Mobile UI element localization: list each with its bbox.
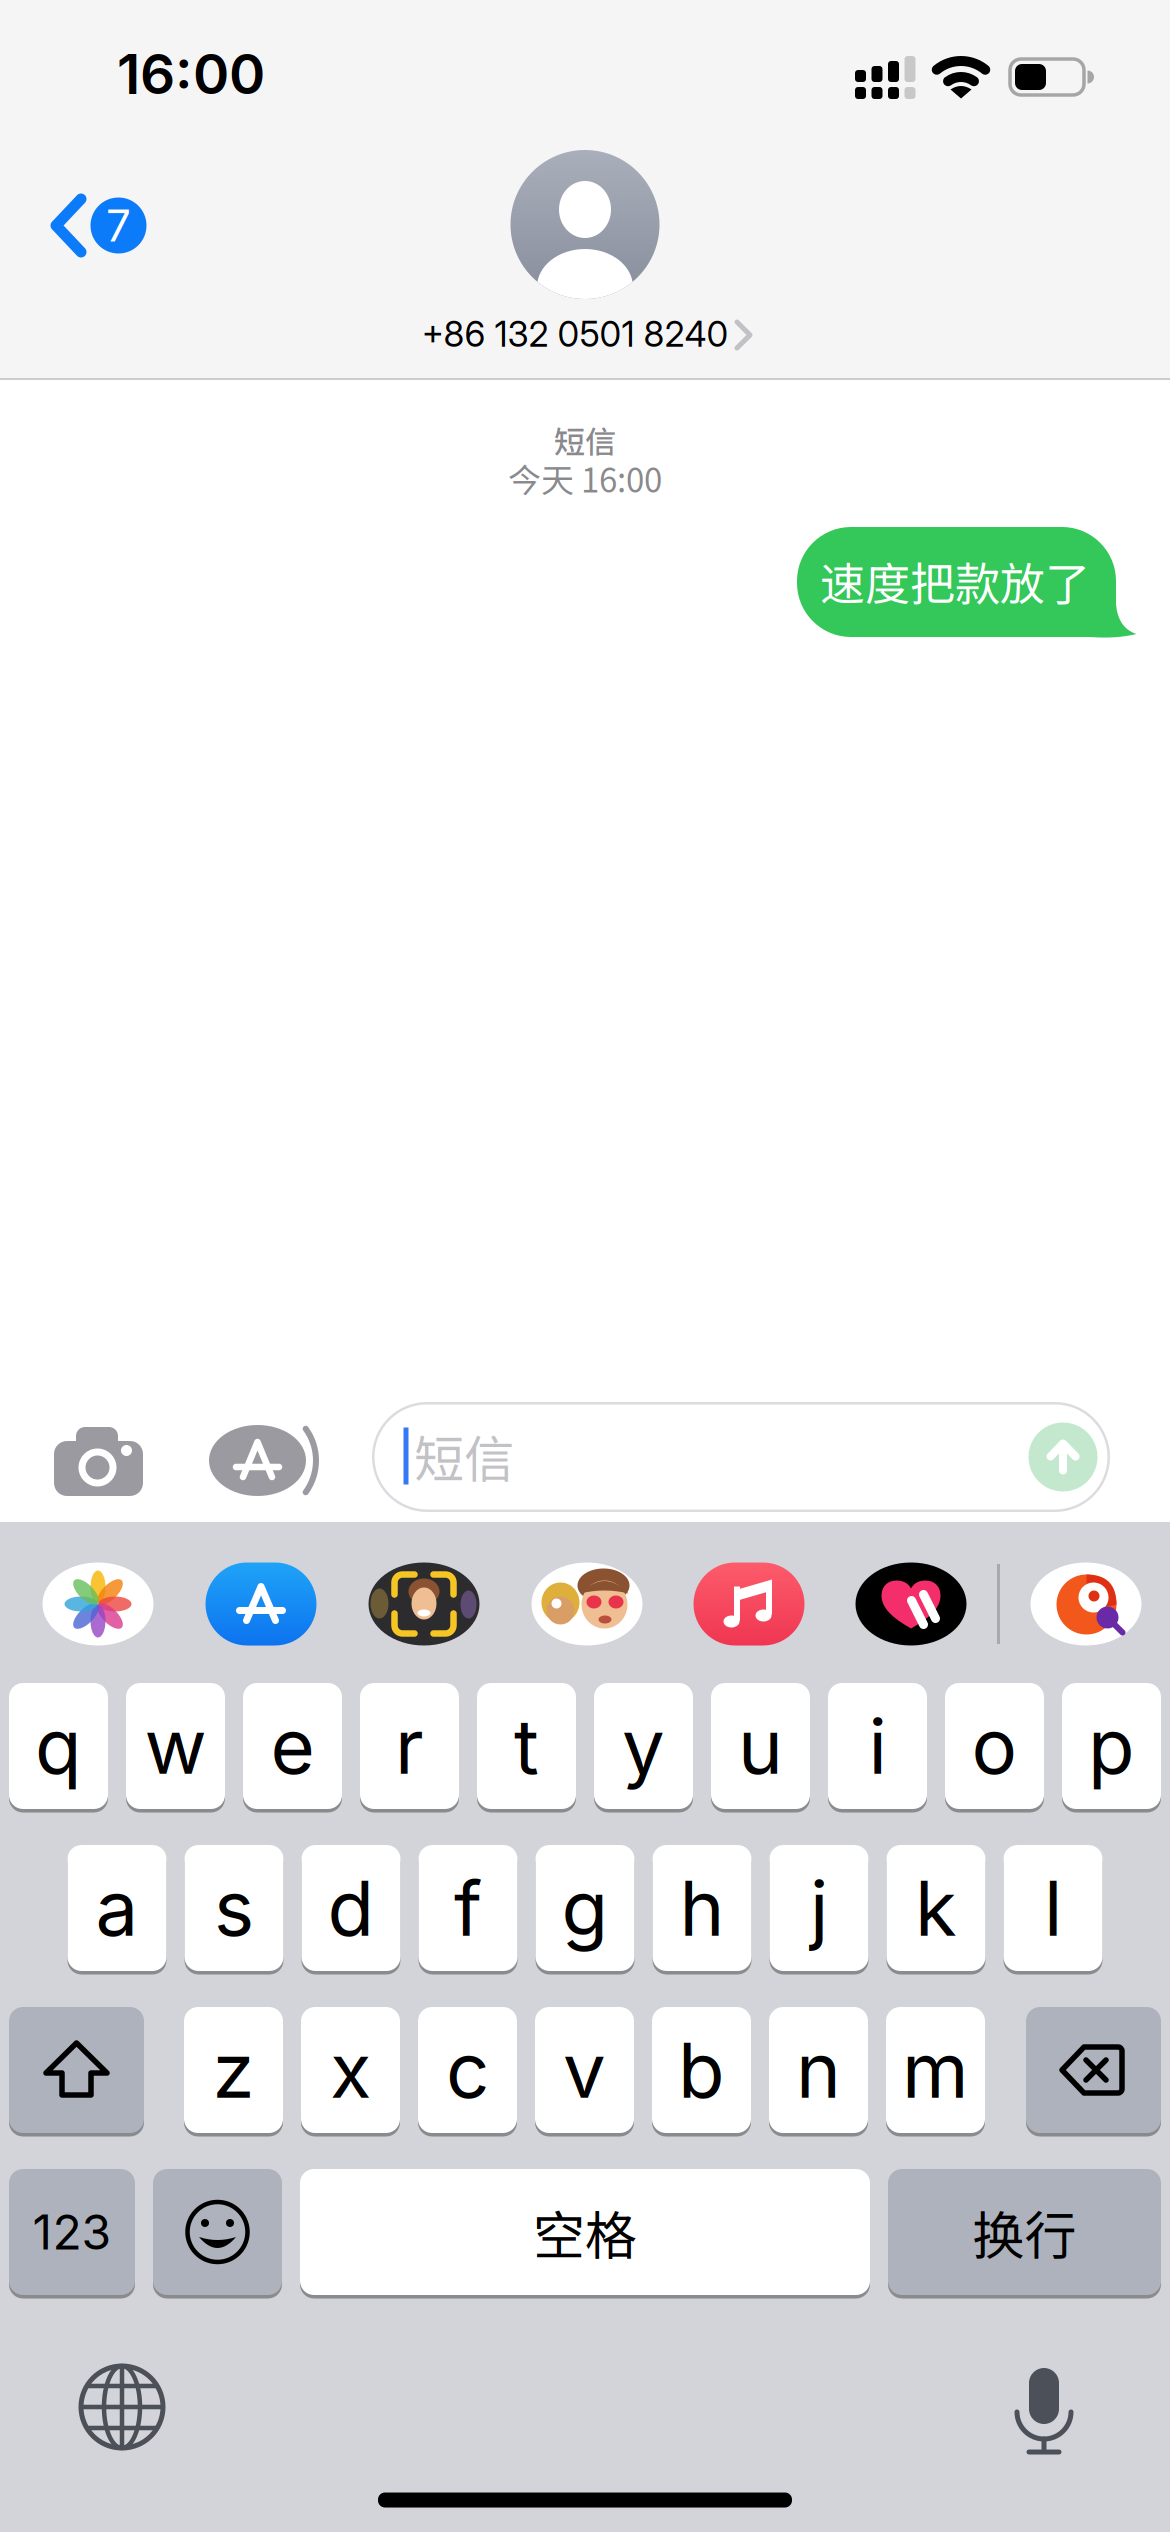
staticText: h: [679, 1862, 724, 1954]
button[interactable]: Music: [693, 1562, 804, 1645]
button[interactable]: x: [301, 2007, 400, 2133]
staticText: y: [622, 1700, 665, 1792]
staticText: b: [678, 2024, 725, 2116]
staticText: f: [454, 1862, 482, 1954]
staticText: o: [971, 1700, 1017, 1792]
button[interactable]: a: [67, 1845, 166, 1971]
staticText: i: [868, 1700, 886, 1792]
staticText: j: [810, 1862, 828, 1954]
staticText: l: [1044, 1862, 1062, 1954]
button[interactable]: Send: [1028, 1422, 1097, 1491]
button[interactable]: Memoji camera: [368, 1562, 479, 1645]
button[interactable]: Emoji: [153, 2169, 282, 2295]
button[interactable]: t: [477, 1683, 576, 1809]
button[interactable]: n: [769, 2007, 868, 2133]
button[interactable]: l: [1003, 1845, 1102, 1971]
button[interactable]: Contact +86 132 0501 8240: [355, 145, 815, 360]
button[interactable]: f: [418, 1845, 517, 1971]
button[interactable]: r: [360, 1683, 459, 1809]
staticText: x: [330, 2024, 371, 2116]
staticText: 空格: [533, 2194, 637, 2270]
button[interactable]: d: [301, 1845, 400, 1971]
button[interactable]: Dictate: [989, 2340, 1099, 2470]
button[interactable]: Next keyboard: [57, 2342, 187, 2472]
staticText: s: [214, 1862, 254, 1954]
staticText: 换行: [972, 2194, 1076, 2270]
staticText: p: [1088, 1700, 1135, 1792]
button[interactable]: c: [418, 2007, 517, 2133]
button[interactable]: k: [886, 1845, 985, 1971]
button[interactable]: w: [126, 1683, 225, 1809]
button[interactable]: z: [184, 2007, 283, 2133]
button[interactable]: K song app: [1030, 1562, 1141, 1645]
staticText: n: [796, 2024, 841, 2116]
button[interactable]: Apps: [197, 1407, 327, 1517]
staticText: 短信: [414, 1420, 514, 1492]
button[interactable]: q: [9, 1683, 108, 1809]
button[interactable]: v: [535, 2007, 634, 2133]
staticText: 7: [106, 199, 131, 252]
staticText: 16:00: [117, 41, 265, 107]
button[interactable]: u: [711, 1683, 810, 1809]
button[interactable]: e: [243, 1683, 342, 1809]
button[interactable]: Back: [0, 0, 190, 379]
button[interactable]: y: [594, 1683, 693, 1809]
button[interactable]: p: [1062, 1683, 1161, 1809]
staticText: d: [327, 1862, 374, 1954]
button[interactable]: Camera: [23, 1407, 173, 1517]
staticText: g: [561, 1862, 608, 1954]
staticText: c: [446, 2024, 489, 2116]
button[interactable]: s: [184, 1845, 283, 1971]
staticText: r: [395, 1700, 424, 1792]
staticText: z: [212, 2024, 254, 2116]
button[interactable]: 空格: [300, 2169, 870, 2295]
button[interactable]: h: [652, 1845, 751, 1971]
staticText: w: [144, 1700, 206, 1792]
button[interactable]: o: [945, 1683, 1044, 1809]
staticText: u: [738, 1700, 783, 1792]
button[interactable]: 换行: [888, 2169, 1161, 2295]
button[interactable]: j: [769, 1845, 868, 1971]
staticText: q: [35, 1700, 82, 1792]
button[interactable]: b: [652, 2007, 751, 2133]
button[interactable]: App Store: [205, 1562, 316, 1645]
staticText: e: [270, 1700, 314, 1792]
button[interactable]: i: [828, 1683, 927, 1809]
button[interactable]: Heart app: [855, 1562, 966, 1645]
staticText: m: [902, 2024, 969, 2116]
staticText: 短信: [554, 418, 616, 462]
staticText: t: [514, 1700, 539, 1792]
staticText: 速度把款放了: [820, 548, 1090, 614]
button[interactable]: Memoji stickers: [531, 1562, 642, 1645]
button[interactable]: m: [886, 2007, 985, 2133]
staticText: 今天 16:00: [508, 454, 662, 502]
button[interactable]: Delete: [1026, 2007, 1161, 2133]
button[interactable]: Photos: [42, 1562, 153, 1645]
button[interactable]: Message field: [372, 1402, 1110, 1512]
staticText: +86 132 0501 8240: [421, 313, 728, 355]
button[interactable]: Shift: [9, 2007, 144, 2133]
button[interactable]: 123: [9, 2169, 135, 2295]
staticText: k: [915, 1862, 957, 1954]
staticText: 123: [32, 2203, 111, 2261]
staticText: v: [563, 2024, 606, 2116]
staticText: a: [95, 1862, 138, 1954]
button[interactable]: g: [535, 1845, 634, 1971]
